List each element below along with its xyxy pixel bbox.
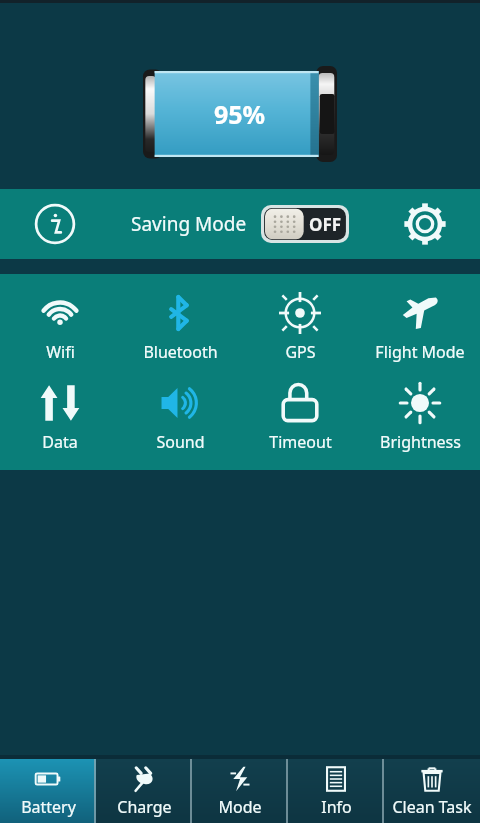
button[interactable]: Saving Mode — [110, 189, 370, 259]
button[interactable]: GPS — [240, 282, 360, 372]
staticText: Wifi — [46, 341, 75, 363]
button[interactable]: Settings — [370, 189, 480, 259]
button[interactable]: Clean Task — [384, 759, 480, 823]
staticText: 95% — [214, 97, 266, 131]
button[interactable]: Flight Mode — [360, 282, 480, 372]
staticText: Clean Task — [392, 796, 472, 818]
staticText: GPS — [285, 341, 316, 363]
staticText: Saving Mode — [131, 211, 247, 237]
button[interactable]: OFF — [261, 205, 349, 243]
button[interactable]: Bluetooth — [120, 282, 240, 372]
button[interactable]: Data — [0, 372, 120, 462]
button[interactable]: Timeout — [240, 372, 360, 462]
staticText: Bluetooth — [143, 341, 218, 363]
button[interactable]: Mode — [192, 759, 288, 823]
button[interactable]: Info — [288, 759, 384, 823]
staticText: Charge — [117, 796, 172, 818]
button[interactable]: Charge — [96, 759, 192, 823]
button[interactable]: Info — [0, 189, 110, 259]
staticText: Data — [42, 431, 78, 453]
staticText: OFF — [309, 213, 342, 236]
staticText: Flight Mode — [375, 341, 465, 363]
button[interactable]: Battery — [0, 759, 96, 823]
button[interactable]: Wifi — [0, 282, 120, 372]
button[interactable]: Sound — [120, 372, 240, 462]
staticText: Battery — [21, 796, 76, 818]
staticText: Brightness — [380, 431, 461, 453]
staticText: Sound — [156, 431, 205, 453]
staticText: Timeout — [269, 431, 332, 453]
staticText: Info — [321, 796, 352, 818]
staticText: Mode — [218, 796, 262, 818]
button[interactable]: Brightness — [360, 372, 480, 462]
